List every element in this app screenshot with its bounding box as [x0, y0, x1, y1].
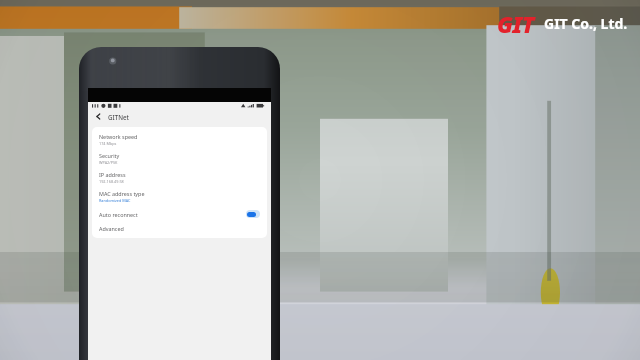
- staticText: 174 Mbps: [99, 141, 117, 146]
- staticText: MAC address type: [99, 190, 145, 197]
- staticText: 192.168.49.58: [99, 179, 124, 184]
- button[interactable]: Auto reconnect: [92, 206, 267, 222]
- staticText: GITNet: [108, 113, 129, 121]
- staticText: Auto reconnect: [99, 211, 138, 218]
- button[interactable]: Navigate up: [93, 111, 104, 122]
- button[interactable]: IP address: [92, 168, 267, 187]
- button[interactable]: Security: [92, 149, 267, 168]
- staticText: GIT: [497, 8, 535, 39]
- staticText: Network speed: [99, 133, 138, 140]
- staticText: Advanced: [99, 225, 124, 232]
- button[interactable]: Advanced: [92, 222, 267, 235]
- staticText: WPA2/PSK: [99, 160, 118, 165]
- staticText: Security: [99, 152, 120, 159]
- staticText: GIT Co., Ltd.: [544, 14, 628, 33]
- staticText: Randomized MAC: [99, 198, 131, 203]
- button[interactable]: MAC address type: [92, 187, 267, 206]
- staticText: IP address: [99, 171, 126, 178]
- button[interactable]: Network speed: [92, 130, 267, 149]
